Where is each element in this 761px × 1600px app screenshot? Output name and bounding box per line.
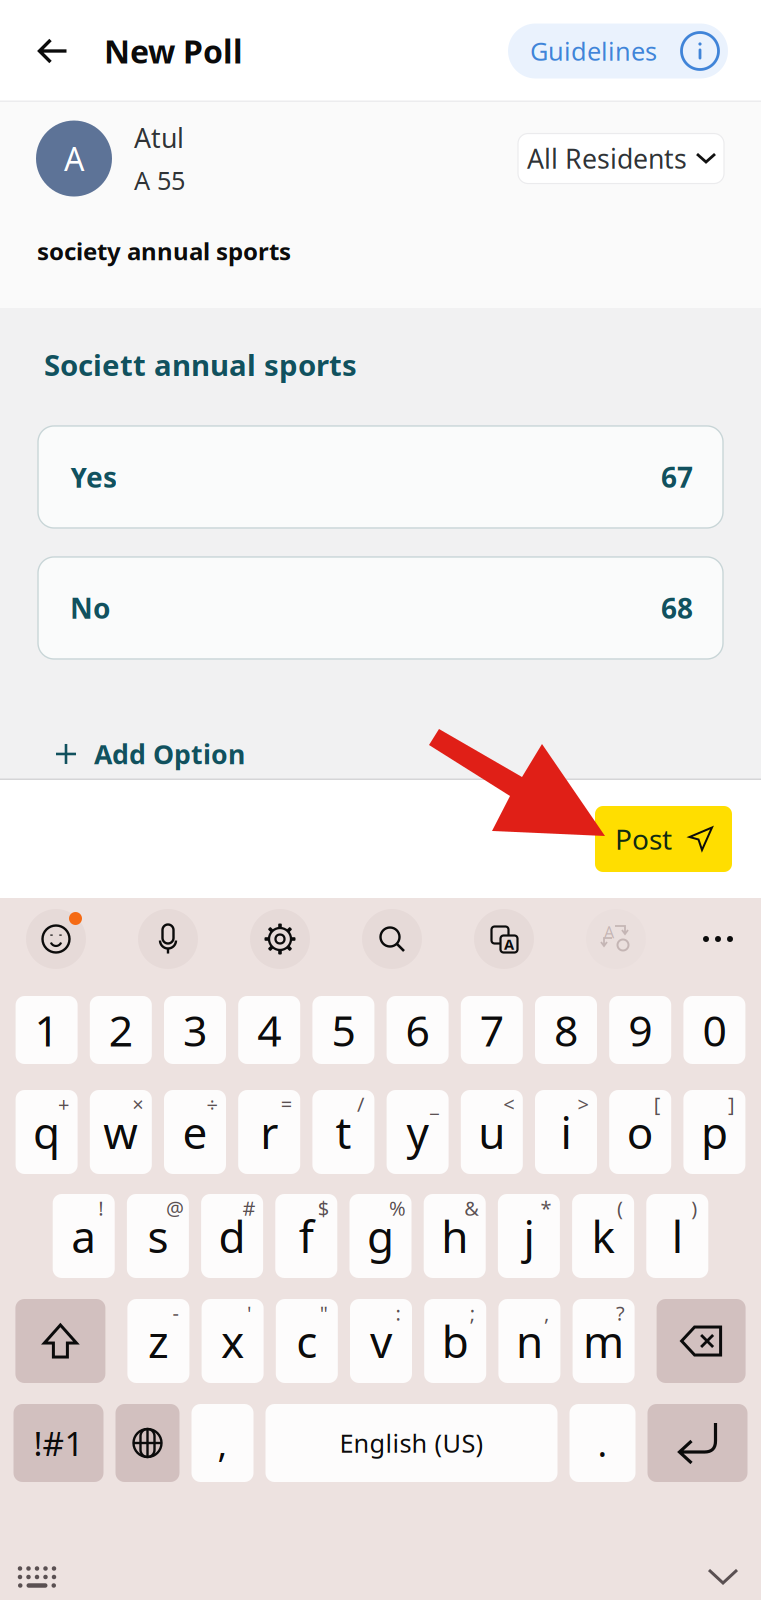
button[interactable]: Post <box>595 806 732 872</box>
staticText: ' <box>247 1300 252 1326</box>
staticText: Yes <box>70 458 117 496</box>
staticText: y <box>407 1103 429 1161</box>
button[interactable]: # <box>201 1194 263 1278</box>
button[interactable] <box>115 1404 179 1482</box>
staticText: A 55 <box>134 163 185 197</box>
button[interactable]: Add Option <box>0 726 761 782</box>
staticText: A <box>64 137 84 180</box>
staticText: s <box>147 1207 168 1265</box>
button[interactable]: 4 <box>238 996 300 1064</box>
staticText: !#1 <box>33 1421 83 1465</box>
staticText: p <box>701 1103 728 1161</box>
staticText: 5 <box>331 1002 355 1058</box>
button[interactable]: " <box>276 1299 338 1383</box>
staticText: a <box>71 1207 96 1265</box>
staticText: b <box>442 1312 469 1370</box>
button[interactable]: ; <box>424 1299 486 1383</box>
button[interactable]: Guidelines <box>508 23 728 78</box>
staticText: t <box>335 1103 351 1161</box>
staticText: 4 <box>257 1002 281 1058</box>
button[interactable]: ? <box>573 1299 635 1383</box>
button[interactable] <box>657 1299 746 1383</box>
staticText: o <box>627 1103 654 1161</box>
button[interactable]: _ <box>387 1090 449 1174</box>
button[interactable] <box>647 1404 747 1482</box>
button[interactable]: Transliterate <box>586 909 646 969</box>
button[interactable]: - <box>127 1299 189 1383</box>
button[interactable]: > <box>535 1090 597 1174</box>
staticText: Atul <box>134 120 184 155</box>
button[interactable]: !#1 <box>13 1404 103 1482</box>
button[interactable]: 8 <box>535 996 597 1064</box>
button[interactable]: * <box>498 1194 560 1278</box>
button[interactable]: [ <box>609 1090 671 1174</box>
button[interactable]: . <box>569 1404 635 1482</box>
button[interactable] <box>15 1299 105 1383</box>
button[interactable]: English (US) <box>265 1404 557 1482</box>
button[interactable]: ÷ <box>164 1090 226 1174</box>
staticText: z <box>148 1312 169 1370</box>
staticText: + <box>58 1091 69 1117</box>
button[interactable]: , <box>498 1299 560 1383</box>
staticText: - <box>172 1300 178 1326</box>
button[interactable]: Translate <box>474 909 534 969</box>
staticText: _ <box>430 1091 439 1117</box>
button[interactable]: Hide keyboard <box>698 1551 748 1600</box>
staticText: society annual sports <box>37 235 291 267</box>
staticText: j <box>523 1207 534 1265</box>
staticText: * <box>540 1195 551 1221</box>
staticText: c <box>296 1312 317 1370</box>
staticText: No <box>70 589 111 627</box>
staticText: r <box>260 1103 278 1161</box>
button[interactable]: ) <box>646 1194 708 1278</box>
button[interactable]: All Residents <box>518 133 724 183</box>
staticText: Add Option <box>94 736 245 772</box>
button[interactable]: 9 <box>609 996 671 1064</box>
staticText: All Residents <box>527 141 687 176</box>
button[interactable]: ' <box>202 1299 264 1383</box>
button[interactable]: < <box>461 1090 523 1174</box>
staticText: New Poll <box>104 30 243 72</box>
button[interactable]: = <box>238 1090 300 1174</box>
button[interactable]: Back <box>22 20 84 82</box>
button[interactable]: ! <box>53 1194 115 1278</box>
staticText: > <box>577 1091 588 1117</box>
button[interactable]: Keyboard layout <box>14 1551 60 1600</box>
staticText: @ <box>166 1195 184 1221</box>
staticText: k <box>592 1207 615 1265</box>
button[interactable]: 5 <box>312 996 374 1064</box>
button[interactable]: 1 <box>16 996 78 1064</box>
button[interactable]: 0 <box>683 996 745 1064</box>
button[interactable]: Settings <box>250 909 310 969</box>
button[interactable]: , <box>191 1404 253 1482</box>
button[interactable]: 3 <box>164 996 226 1064</box>
staticText: h <box>441 1207 468 1265</box>
button[interactable]: ] <box>683 1090 745 1174</box>
button[interactable]: % <box>349 1194 411 1278</box>
staticText: ! <box>98 1195 103 1221</box>
button[interactable]: $ <box>275 1194 337 1278</box>
staticText: f <box>299 1207 314 1265</box>
button[interactable]: : <box>350 1299 412 1383</box>
button[interactable]: / <box>312 1090 374 1174</box>
button[interactable]: ( <box>572 1194 634 1278</box>
staticText: < <box>503 1091 514 1117</box>
button[interactable]: × <box>90 1090 152 1174</box>
button[interactable]: Search <box>362 909 422 969</box>
button[interactable]: @ <box>127 1194 189 1278</box>
button[interactable]: 6 <box>387 996 449 1064</box>
staticText: e <box>182 1103 207 1161</box>
button[interactable]: More <box>691 910 745 968</box>
staticText: ] <box>728 1091 735 1117</box>
button[interactable]: Voice input <box>138 909 198 969</box>
button[interactable]: & <box>424 1194 486 1278</box>
button[interactable]: 2 <box>90 996 152 1064</box>
staticText: Guidelines <box>530 34 657 68</box>
staticText: A <box>604 921 614 943</box>
button[interactable]: + <box>16 1090 78 1174</box>
staticText: ; <box>470 1300 475 1326</box>
button[interactable]: 7 <box>461 996 523 1064</box>
staticText: = <box>281 1091 292 1117</box>
staticText: g <box>367 1207 394 1265</box>
button[interactable]: Emoji <box>26 909 86 969</box>
